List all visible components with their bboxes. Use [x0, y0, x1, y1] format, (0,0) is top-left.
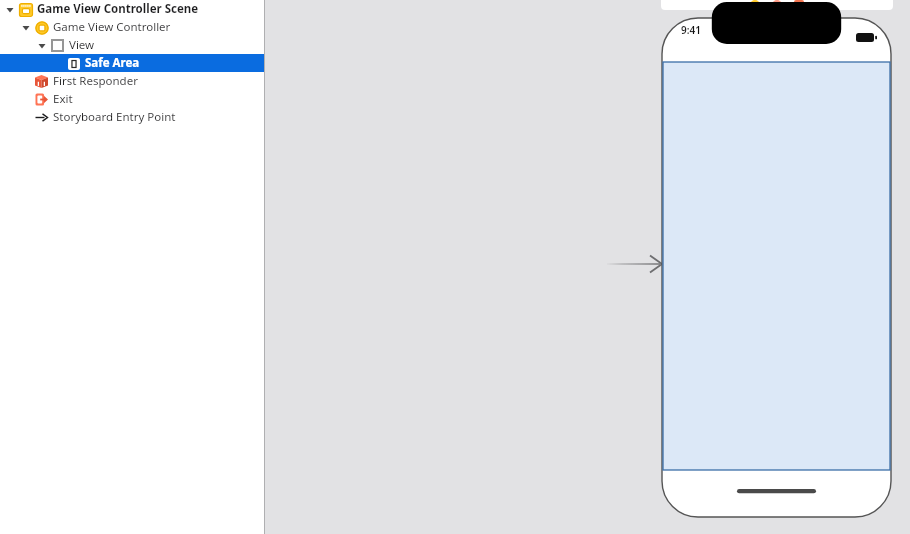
staticText: Game View Controller Scene	[37, 1, 199, 17]
staticText: Game View Controller	[53, 19, 171, 35]
button[interactable]: Scene toolbar	[661, 0, 893, 10]
button[interactable]: First Responder	[0, 72, 265, 90]
staticText: Storyboard Entry Point	[53, 109, 176, 125]
staticText: Safe Area	[85, 55, 140, 71]
button[interactable]: iPhone preview	[662, 18, 891, 517]
button[interactable]: View	[0, 36, 265, 54]
button[interactable]: Storyboard Entry Point	[0, 108, 265, 126]
staticText: View	[69, 37, 95, 53]
button[interactable]: Game View Controller Scene	[0, 0, 265, 18]
staticText: Exit	[53, 91, 73, 107]
button[interactable]: Safe Area	[0, 54, 265, 72]
staticText: First Responder	[53, 73, 138, 89]
button[interactable]: Game View Controller	[0, 18, 265, 36]
button[interactable]: Exit	[0, 90, 265, 108]
staticText: 9:41	[681, 23, 701, 37]
